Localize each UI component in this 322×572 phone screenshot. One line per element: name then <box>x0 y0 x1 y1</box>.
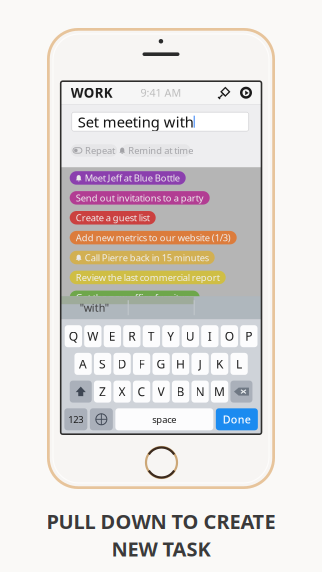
button[interactable]: X <box>113 381 131 403</box>
staticText: Remind at time <box>128 144 193 157</box>
staticText: K <box>216 356 223 372</box>
button[interactable]: G <box>152 353 170 375</box>
staticText: W <box>87 328 98 344</box>
staticText: F <box>139 356 145 372</box>
button[interactable]: F <box>133 353 150 375</box>
button[interactable]: L <box>230 353 248 375</box>
button[interactable]: Meet Jeff at Blue Bottle <box>70 171 186 185</box>
staticText: Q <box>69 328 78 344</box>
staticText: U <box>186 328 195 344</box>
staticText: space <box>152 413 176 425</box>
button[interactable]: Done <box>216 408 258 430</box>
button[interactable]: Get the new office furniture <box>70 291 200 304</box>
staticText: 123 <box>68 413 83 425</box>
staticText: Done <box>223 412 251 426</box>
staticText: Meet Jeff at Blue Bottle <box>85 172 180 184</box>
button[interactable]: J <box>191 353 209 375</box>
staticText: 9:41 AM <box>141 86 182 100</box>
staticText: G <box>157 356 166 372</box>
button[interactable]: Create a guest list <box>70 211 156 224</box>
staticText: Repeat <box>85 144 115 157</box>
staticText: Y <box>167 328 174 344</box>
button[interactable]: V <box>152 381 170 403</box>
staticText: NEW TASK <box>111 536 210 562</box>
button[interactable]: I <box>201 325 218 347</box>
button[interactable]: Z <box>94 381 111 403</box>
staticText: A <box>79 356 87 372</box>
button[interactable]: Y <box>162 325 179 347</box>
staticText: R <box>128 328 135 344</box>
staticText: Get the new office furniture <box>76 291 194 304</box>
button[interactable]: Call Pierre back in 15 minutes <box>70 251 215 264</box>
staticText: D <box>118 356 127 372</box>
button[interactable]: E <box>104 325 121 347</box>
button[interactable]: Shift <box>70 381 92 403</box>
staticText: H <box>176 356 185 372</box>
staticText: P <box>245 328 252 344</box>
staticText: B <box>177 384 185 399</box>
button[interactable]: Theme <box>217 86 230 99</box>
staticText: N <box>196 384 205 399</box>
staticText: Z <box>99 384 106 399</box>
button[interactable]: P <box>240 325 257 347</box>
staticText: WORK <box>71 84 113 101</box>
button[interactable]: B <box>172 381 189 403</box>
staticText: "with" <box>80 301 109 315</box>
button[interactable]: U <box>182 325 199 347</box>
button[interactable]: R <box>123 325 140 347</box>
staticText: Create a guest list <box>76 212 150 224</box>
staticText: C <box>138 384 146 399</box>
button[interactable]: K <box>211 353 228 375</box>
button[interactable]: Review the last commercial report <box>70 271 226 284</box>
staticText: M <box>214 384 225 399</box>
staticText: Call Pierre back in 15 minutes <box>85 251 209 264</box>
staticText: V <box>158 384 165 399</box>
staticText: Review the last commercial report <box>76 271 220 284</box>
button[interactable]: D <box>113 353 131 375</box>
button[interactable]: W <box>84 325 101 347</box>
button[interactable]: space <box>115 408 213 430</box>
button[interactable]: H <box>172 353 189 375</box>
staticText: Send out invitations to a party <box>76 192 204 204</box>
button[interactable]: 123 <box>64 408 87 430</box>
button[interactable]: T <box>143 325 160 347</box>
button[interactable]: Repeat <box>71 144 117 157</box>
button[interactable]: Start timer <box>239 86 252 99</box>
staticText: O <box>225 328 234 344</box>
staticText: J <box>199 356 202 372</box>
staticText: I <box>208 328 212 344</box>
button[interactable]: C <box>133 381 150 403</box>
button[interactable]: M <box>211 381 228 403</box>
button[interactable]: A <box>74 353 92 375</box>
button[interactable]: Send out invitations to a party <box>70 191 210 205</box>
button[interactable]: Add new metrics to our website (1/3) <box>70 231 237 244</box>
button[interactable]: S <box>94 353 111 375</box>
staticText: PULL DOWN TO CREATE <box>46 508 275 535</box>
staticText: E <box>109 328 116 344</box>
button[interactable]: Q <box>65 325 82 347</box>
staticText: L <box>236 356 242 372</box>
button[interactable]: N <box>191 381 209 403</box>
button[interactable]: Delete <box>230 381 252 403</box>
staticText: S <box>99 356 106 372</box>
staticText: Set meeting with <box>78 112 194 131</box>
staticText: Add new metrics to our website (1/3) <box>76 231 231 244</box>
button[interactable]: Next keyboard <box>90 408 113 430</box>
button[interactable]: O <box>221 325 238 347</box>
staticText: T <box>148 328 155 344</box>
staticText: X <box>119 384 126 399</box>
button[interactable]: Remind at time <box>122 144 191 157</box>
